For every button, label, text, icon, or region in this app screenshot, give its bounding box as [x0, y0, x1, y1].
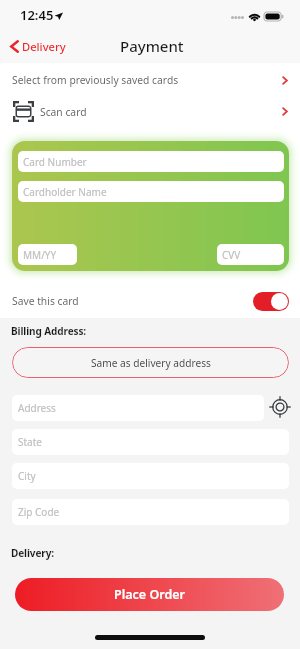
button[interactable]: CVV [217, 244, 284, 265]
button[interactable]: Scan card [0, 96, 300, 127]
staticText: 12:45 [20, 6, 54, 24]
staticText: Address [18, 401, 56, 415]
staticText: Scan card [40, 105, 87, 119]
button[interactable]: Card Number [18, 151, 284, 172]
staticText: Zip Code [18, 505, 60, 519]
staticText: State [18, 435, 42, 449]
staticText: Cardholder Name [23, 185, 107, 199]
staticText: Delivery: [11, 546, 55, 560]
button[interactable]: Select from previously saved cards [0, 64, 300, 96]
button[interactable]: Delivery [6, 36, 72, 57]
staticText: CVV [222, 248, 241, 262]
button[interactable]: State [12, 429, 289, 455]
button[interactable]: Cardholder Name [18, 181, 284, 202]
staticText: Save this card [12, 294, 79, 308]
staticText: Delivery [22, 39, 66, 54]
staticText: Billing Address: [11, 324, 87, 338]
staticText: City [18, 469, 36, 483]
button[interactable]: Use current location [269, 396, 291, 418]
staticText: MM/YY [23, 248, 57, 262]
staticText: Place Order [114, 586, 185, 603]
button[interactable]: City [12, 463, 289, 489]
staticText: Select from previously saved cards [12, 73, 179, 87]
staticText: Payment [120, 36, 184, 56]
button[interactable]: Place Order [15, 578, 284, 611]
button[interactable]: Zip Code [12, 499, 289, 525]
button[interactable]: Same as delivery address [12, 347, 289, 378]
staticText: Card Number [23, 155, 87, 169]
button[interactable]: Save this card [253, 292, 289, 311]
button[interactable]: Save this card [0, 289, 300, 313]
button[interactable]: Address [12, 395, 264, 421]
button[interactable]: MM/YY [18, 244, 77, 265]
staticText: Same as delivery address [91, 356, 211, 370]
